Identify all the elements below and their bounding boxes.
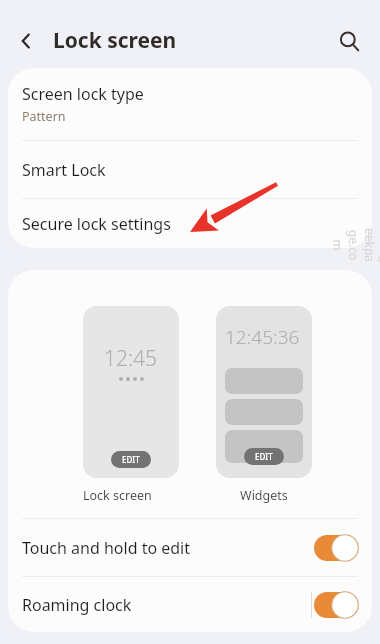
staticText: Smart Lock xyxy=(22,159,106,181)
button[interactable]: Touch and hold to edit xyxy=(8,519,372,576)
staticText: Secure lock settings xyxy=(22,213,171,235)
button[interactable]: Back xyxy=(6,21,46,61)
staticText: ©thegeekpage.com xyxy=(330,227,380,263)
staticText: EDIT xyxy=(255,451,273,462)
button[interactable]: Secure lock settings xyxy=(8,199,372,248)
button[interactable]: Smart Lock xyxy=(8,141,372,198)
button[interactable]: Toggle xyxy=(314,592,358,618)
button[interactable]: 12:45:36 xyxy=(216,306,312,478)
staticText: Roaming clock xyxy=(22,594,132,616)
staticText: Lock screen xyxy=(83,487,179,504)
button[interactable]: Search xyxy=(329,21,369,61)
staticText: Lock screen xyxy=(53,26,177,55)
staticText: Widgets xyxy=(240,487,288,504)
button[interactable]: Toggle xyxy=(314,535,358,561)
button[interactable]: Screen lock type xyxy=(8,68,372,140)
staticText: EDIT xyxy=(122,454,140,465)
button[interactable]: 12:45 xyxy=(83,306,179,478)
staticText: Pattern xyxy=(22,108,66,125)
button[interactable]: Roaming clock xyxy=(8,577,372,632)
staticText: 12:45 xyxy=(104,344,158,373)
button[interactable]: EDIT xyxy=(111,451,151,468)
staticText: Screen lock type xyxy=(22,83,144,105)
staticText: Touch and hold to edit xyxy=(22,537,191,559)
button[interactable]: EDIT xyxy=(244,448,284,465)
staticText: 12:45:36 xyxy=(225,324,300,350)
